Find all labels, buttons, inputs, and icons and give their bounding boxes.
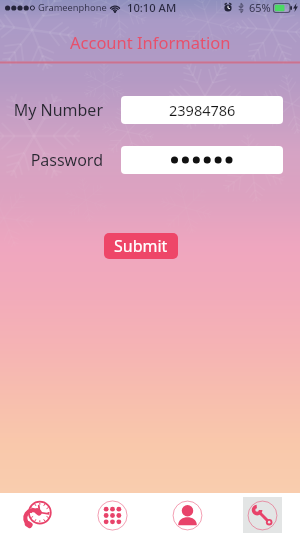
staticText: 65% xyxy=(249,0,271,15)
button[interactable]: Submit xyxy=(104,233,178,259)
button[interactable]: Settings xyxy=(225,493,300,533)
staticText: 23984786 xyxy=(169,100,236,120)
button[interactable]: Contacts xyxy=(150,493,225,533)
staticText: My Number xyxy=(13,99,103,121)
button[interactable]: Keypad xyxy=(75,493,150,533)
button[interactable]: Recents xyxy=(0,493,75,533)
staticText: Account Information xyxy=(70,31,231,53)
staticText: 10:10 AM xyxy=(127,0,177,15)
button[interactable]: 23984786 xyxy=(121,96,283,124)
staticText: Password xyxy=(30,149,103,171)
staticText: Grameenphone xyxy=(38,1,107,14)
button[interactable] xyxy=(121,146,283,174)
staticText: Submit xyxy=(114,235,168,257)
